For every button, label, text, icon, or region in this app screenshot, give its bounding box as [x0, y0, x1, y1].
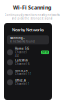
staticText: Guest_24	[15, 69, 28, 72]
staticText: Channel 1	[15, 82, 30, 86]
button[interactable]: Home 5G	[4, 47, 52, 57]
staticText: Scanning…	[10, 36, 25, 40]
staticText: Office_A	[15, 79, 26, 82]
button[interactable]: CafeWiFi	[4, 57, 52, 67]
staticText: Continuously monitors nearby networks	[4, 13, 59, 17]
staticText: Wi-Fi Scanning	[13, 4, 51, 11]
staticText: Channel 11	[15, 72, 32, 76]
staticText: Nearby Networks	[12, 27, 44, 32]
button[interactable]: Office_A	[4, 77, 52, 87]
staticText: CafeWiFi	[15, 59, 28, 62]
staticText: Home 5G	[15, 47, 29, 50]
staticText: and picks the strongest signal	[11, 17, 52, 20]
staticText: 4 networks found	[10, 40, 35, 43]
staticText: Best	[42, 50, 48, 54]
staticText: Channel 6	[15, 62, 30, 66]
staticText: Channel 44	[15, 50, 27, 58]
button[interactable]: Guest_24	[4, 67, 52, 77]
